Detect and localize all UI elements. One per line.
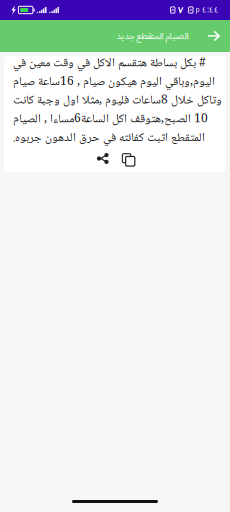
button[interactable]: Copy (115, 148, 139, 168)
staticText: p (195, 3, 199, 17)
staticText: الصيام المتقطع جديد (116, 26, 188, 45)
button[interactable]: Back (206, 25, 222, 47)
button[interactable]: Share (91, 148, 115, 168)
staticText: # بكل بساطة هتقسم الاكل في وقت معين في ا… (13, 53, 222, 148)
staticText: ٤:٤٤ (202, 2, 219, 18)
